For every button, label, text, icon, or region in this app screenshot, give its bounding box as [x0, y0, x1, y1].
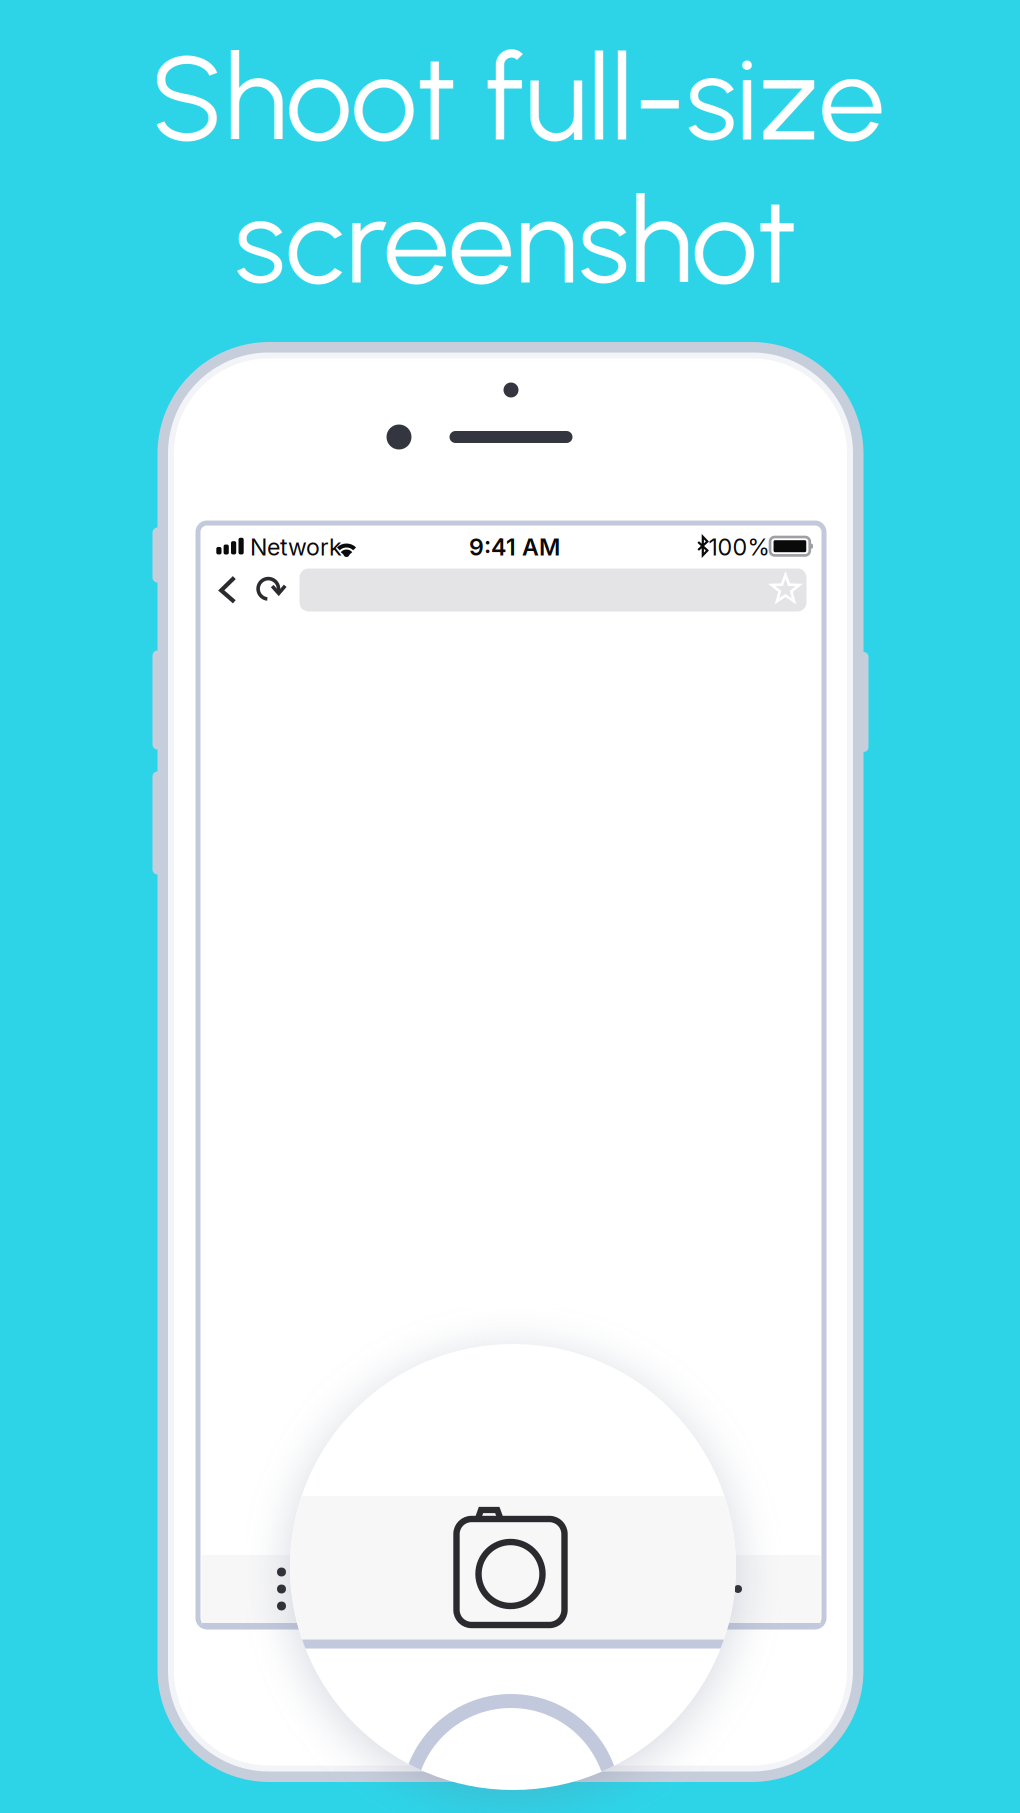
staticText: Network — [250, 533, 342, 561]
button[interactable]: Back — [205, 563, 251, 617]
staticText: Shoot full-size — [150, 27, 884, 169]
staticText: 100% — [708, 533, 769, 561]
staticText: 9:41 AM — [469, 533, 560, 561]
staticText: screenshot — [234, 170, 797, 312]
button[interactable]: Reload — [246, 563, 292, 617]
button[interactable]: Address bar — [299, 568, 806, 611]
